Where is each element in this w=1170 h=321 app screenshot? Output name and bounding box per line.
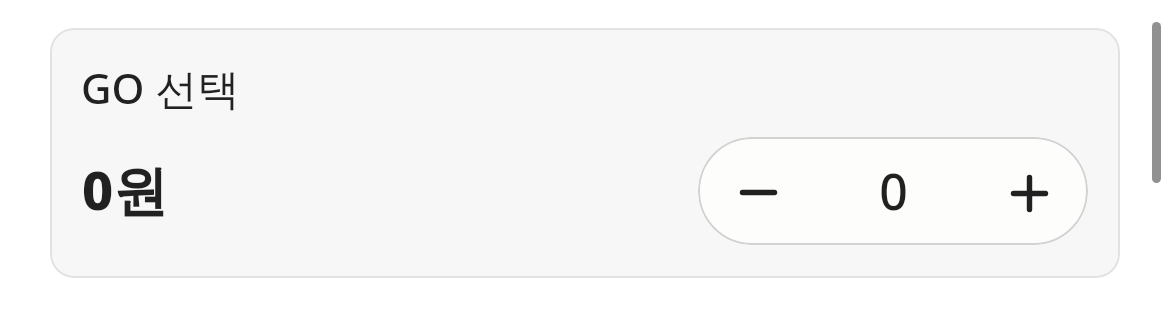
staticText: GO 선택 [81, 59, 240, 116]
button[interactable]: Decrease quantity [698, 137, 819, 245]
staticText: 0 [879, 157, 908, 225]
button[interactable]: GO 선택 [50, 28, 1120, 278]
staticText: 0원 [82, 152, 168, 226]
button[interactable]: Increase quantity [967, 137, 1088, 245]
